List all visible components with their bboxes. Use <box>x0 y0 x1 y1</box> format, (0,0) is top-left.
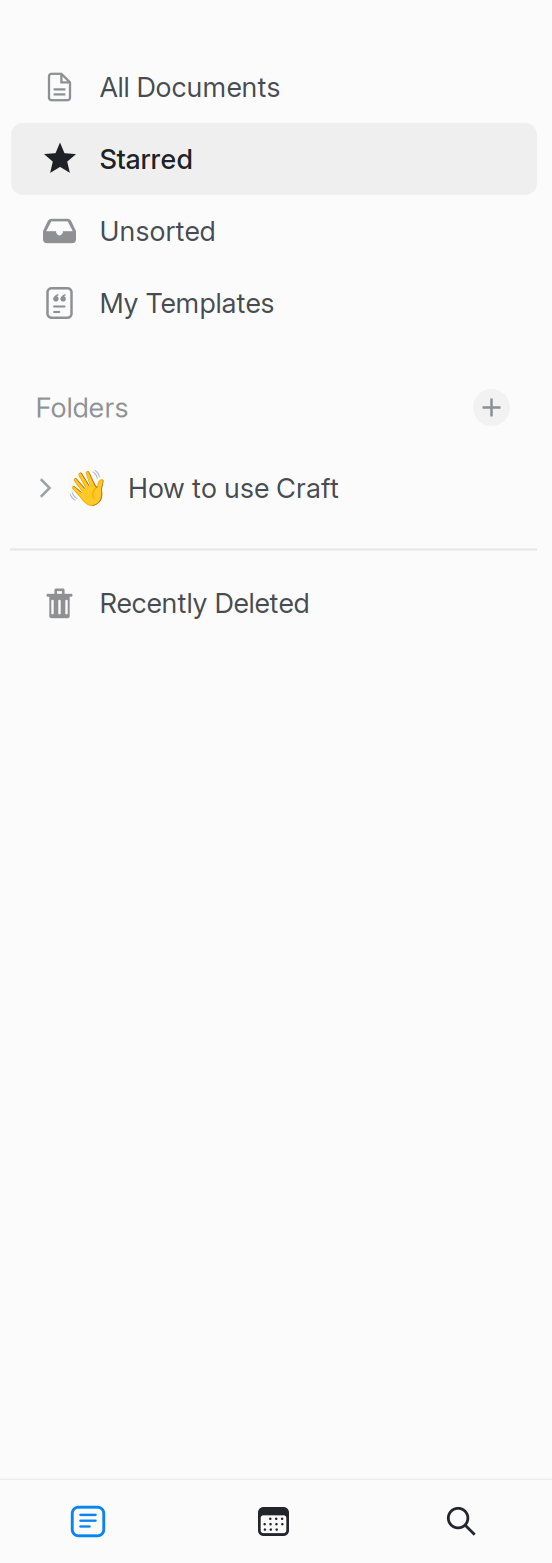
button[interactable]: 👋 <box>0 477 552 539</box>
staticText: My Templates <box>99 286 274 320</box>
button[interactable]: Calendar <box>176 1480 371 1563</box>
button[interactable]: My Templates <box>11 267 537 339</box>
button[interactable]: All Documents <box>11 51 537 123</box>
button[interactable]: Starred <box>11 123 537 195</box>
button[interactable]: Add folder <box>473 389 510 426</box>
staticText: Starred <box>99 142 192 176</box>
button[interactable]: Unsorted <box>11 195 537 267</box>
staticText: Recently Deleted <box>99 586 309 620</box>
staticText: Folders <box>35 391 128 424</box>
staticText: Unsorted <box>99 214 215 248</box>
staticText: 👋 <box>66 468 109 508</box>
button[interactable]: Search <box>371 1480 552 1563</box>
button[interactable]: Recently Deleted <box>11 567 537 639</box>
staticText: All Documents <box>99 70 280 104</box>
button[interactable]: Documents <box>0 1480 176 1563</box>
staticText: How to use Craft <box>128 471 339 505</box>
